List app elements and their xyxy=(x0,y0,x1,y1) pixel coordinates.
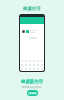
staticText: 健康新生活 xyxy=(21,79,43,85)
button[interactable]: 立即体验 xyxy=(27,90,38,96)
staticText: 健康生活 xyxy=(23,6,41,12)
staticText: 随时随地关注健康 xyxy=(22,86,42,89)
staticText: 立即体验 xyxy=(28,92,37,95)
